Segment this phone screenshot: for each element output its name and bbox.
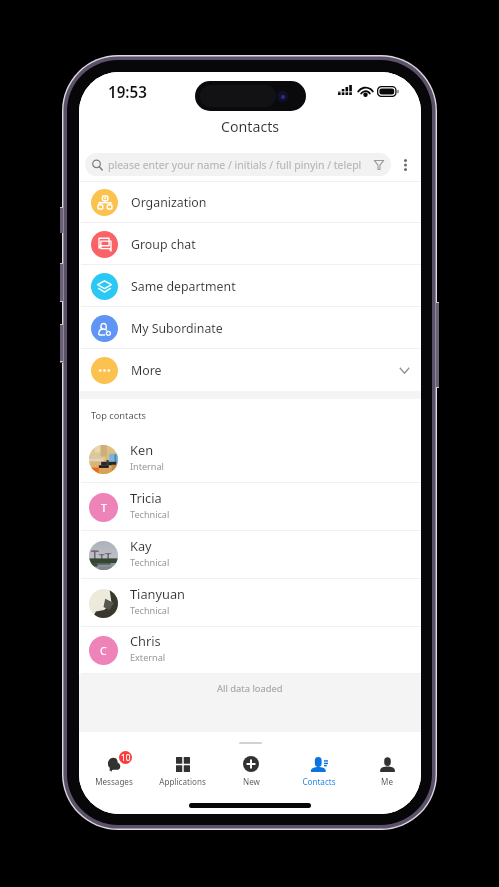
- button[interactable]: My Subordinate: [79, 307, 421, 349]
- staticText: All data loaded: [217, 682, 283, 695]
- button[interactable]: Filter: [368, 153, 391, 176]
- button[interactable]: Contacts: [285, 732, 353, 792]
- staticText: Contacts: [221, 117, 280, 136]
- staticText: Kay: [130, 537, 152, 554]
- staticText: More: [131, 362, 162, 379]
- button[interactable]: More options: [395, 153, 415, 176]
- staticText: Me: [381, 776, 393, 787]
- staticText: Same department: [131, 278, 236, 295]
- staticText: Top contacts: [91, 409, 146, 422]
- staticText: Group chat: [131, 236, 196, 253]
- staticText: Tianyuan: [130, 585, 186, 602]
- button[interactable]: New: [217, 732, 285, 792]
- button[interactable]: Ken: [79, 435, 421, 483]
- button[interactable]: C: [79, 627, 421, 674]
- button[interactable]: Same department: [79, 265, 421, 307]
- button[interactable]: Tianyuan: [79, 579, 421, 627]
- button[interactable]: Organization: [79, 181, 421, 223]
- button[interactable]: Group chat: [79, 223, 421, 265]
- button[interactable]: More: [79, 349, 421, 391]
- staticText: Applications: [159, 776, 206, 787]
- staticText: Internal: [130, 460, 164, 472]
- staticText: New: [243, 776, 260, 787]
- button[interactable]: Applications: [148, 732, 217, 792]
- staticText: Tricia: [130, 489, 162, 506]
- staticText: External: [130, 651, 166, 663]
- staticText: please enter your name / initials / full…: [108, 158, 362, 172]
- staticText: T: [101, 501, 107, 515]
- button[interactable]: please enter your name / initials / full…: [85, 153, 391, 176]
- staticText: Organization: [131, 194, 207, 211]
- button[interactable]: Kay: [79, 531, 421, 579]
- button[interactable]: Me: [353, 732, 421, 792]
- staticText: Ken: [130, 441, 154, 458]
- staticText: Technical: [130, 556, 170, 568]
- staticText: My Subordinate: [131, 320, 223, 337]
- staticText: C: [100, 644, 107, 658]
- staticText: 19:53: [108, 82, 147, 103]
- staticText: Technical: [130, 508, 170, 520]
- button[interactable]: 10: [79, 732, 148, 792]
- staticText: Messages: [95, 776, 133, 787]
- button[interactable]: T: [79, 483, 421, 531]
- staticText: Contacts: [302, 776, 336, 787]
- staticText: Chris: [130, 632, 161, 649]
- staticText: 10: [121, 752, 131, 763]
- staticText: Technical: [130, 604, 170, 616]
